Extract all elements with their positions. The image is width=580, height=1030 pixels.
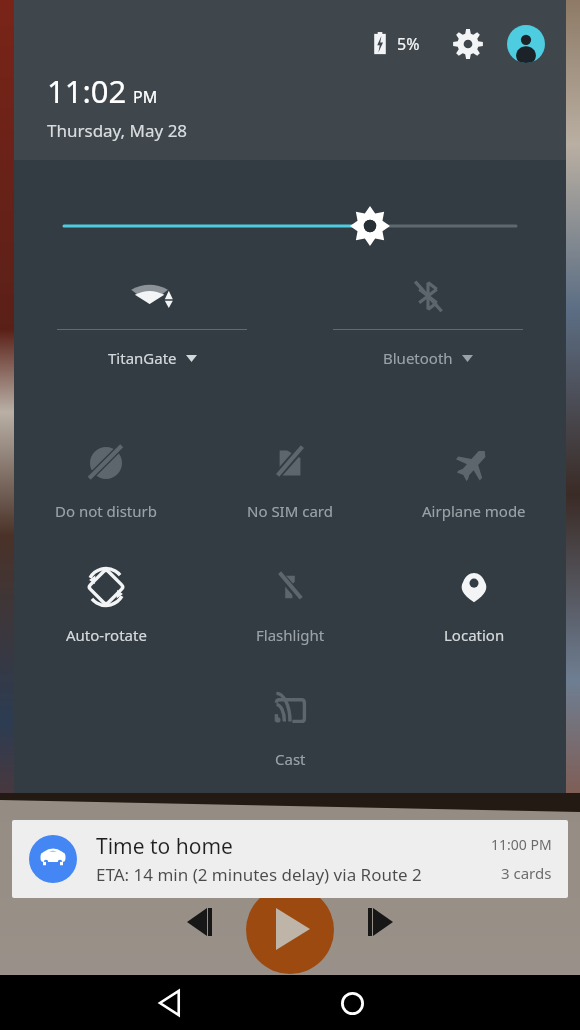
staticText: Do not disturb (55, 501, 157, 521)
staticText: Location (444, 625, 505, 645)
staticText: Auto-rotate (66, 625, 147, 645)
button[interactable]: Cast (198, 673, 382, 793)
staticText: TitanGate (108, 348, 177, 368)
staticText: Bluetooth (383, 348, 453, 368)
staticText: Airplane mode (422, 501, 526, 521)
button[interactable]: Brightness (14, 160, 566, 260)
button[interactable]: No SIM card (198, 425, 382, 549)
button[interactable]: Auto-rotate (14, 549, 198, 673)
button[interactable]: Location (382, 549, 566, 673)
staticText: 3 cards (501, 863, 552, 883)
button[interactable]: Settings (446, 22, 490, 66)
staticText: PM (133, 86, 158, 108)
button[interactable]: Do not disturb (14, 425, 198, 549)
button[interactable]: Home (325, 976, 379, 1030)
button[interactable]: Airplane mode (382, 425, 566, 549)
staticText: ETA: 14 min (2 minutes delay) via Route … (96, 863, 422, 886)
button[interactable]: Back (145, 976, 199, 1030)
staticText: Time to home (96, 832, 233, 861)
button[interactable]: Bluetooth (290, 260, 566, 380)
button[interactable]: User profile (504, 22, 548, 66)
button[interactable]: Flashlight (198, 549, 382, 673)
button[interactable]: TitanGate (14, 260, 290, 380)
staticText: Cast (275, 749, 306, 769)
staticText: Thursday, May 28 (47, 119, 188, 142)
staticText: 11:02 (47, 70, 127, 112)
staticText: 5% (397, 33, 420, 55)
staticText: No SIM card (247, 501, 333, 521)
button[interactable]: Time to home (12, 820, 568, 898)
staticText: 11:00 PM (491, 835, 552, 854)
staticText: Flashlight (256, 625, 325, 645)
